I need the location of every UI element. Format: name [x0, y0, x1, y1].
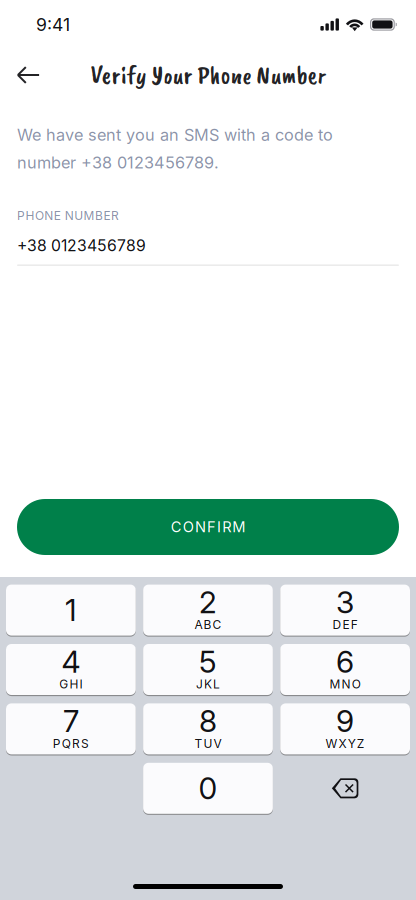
staticText: 9:41	[36, 14, 70, 35]
staticText: 2	[199, 584, 217, 620]
staticText: 8	[199, 703, 217, 739]
staticText: WXYZ	[325, 736, 365, 751]
button[interactable]: Back	[6, 53, 50, 97]
staticText: 1	[65, 592, 77, 628]
staticText: MNO	[329, 677, 361, 691]
staticText: 6	[336, 644, 354, 680]
staticText: 0	[198, 770, 217, 806]
staticText: Verify Your Phone Number	[90, 59, 325, 91]
staticText: 9	[336, 703, 354, 739]
staticText: JKL	[196, 677, 220, 691]
button[interactable]: 7	[6, 703, 136, 755]
button[interactable]: 9	[280, 703, 410, 755]
staticText: CONFIRM	[171, 518, 245, 536]
staticText: ABC	[194, 617, 222, 632]
staticText: +38 0123456789	[17, 236, 146, 255]
button[interactable]: Delete	[280, 762, 410, 814]
staticText: GHI	[59, 677, 82, 691]
staticText: PQRS	[53, 736, 89, 751]
button[interactable]: 0	[143, 762, 273, 814]
staticText: TUV	[194, 736, 222, 751]
staticText: 4	[61, 644, 80, 680]
staticText: DEF	[332, 617, 358, 632]
staticText: 3	[336, 584, 354, 620]
button[interactable]: 6	[280, 643, 410, 696]
staticText: PHONE NUMBER	[17, 208, 119, 223]
staticText: 7	[63, 703, 79, 739]
button[interactable]: 2	[143, 584, 273, 636]
button[interactable]: 5	[143, 643, 273, 696]
button[interactable]: 3	[280, 584, 410, 636]
staticText: We have sent you an SMS with a code to n…	[17, 125, 333, 172]
button[interactable]: CONFIRM	[17, 499, 399, 555]
button[interactable]: 1	[6, 584, 136, 636]
button[interactable]: 4	[6, 643, 136, 696]
staticText: 5	[199, 644, 217, 680]
button[interactable]: 8	[143, 703, 273, 755]
